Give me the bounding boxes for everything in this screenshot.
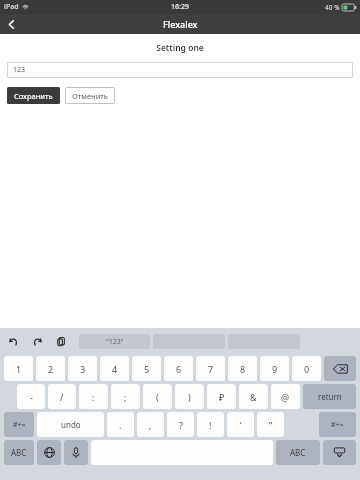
button[interactable]: &: [239, 384, 268, 409]
button[interactable]: undo: [37, 412, 104, 437]
button[interactable]: /: [48, 384, 76, 409]
button[interactable]: Paste: [53, 333, 69, 349]
staticText: 123: [13, 65, 26, 75]
staticText: ): [188, 391, 191, 403]
staticText: 5: [144, 363, 150, 375]
staticText: 8: [240, 363, 246, 375]
button[interactable]: 0: [292, 356, 321, 381]
button[interactable]: #+=: [319, 412, 356, 437]
staticText: .: [119, 419, 122, 431]
button[interactable]: ’: [227, 412, 254, 437]
button[interactable]: ?: [167, 412, 194, 437]
staticText: 9: [272, 363, 278, 375]
staticText: ,: [149, 419, 152, 431]
button[interactable]: (: [143, 384, 172, 409]
staticText: “123”: [106, 337, 124, 347]
button[interactable]: Hide keyboard: [323, 440, 356, 465]
button[interactable]: !: [197, 412, 224, 437]
button[interactable]: 123: [7, 62, 353, 78]
staticText: ’: [240, 419, 242, 431]
staticText: ABC: [290, 447, 306, 458]
staticText: 3: [80, 363, 86, 375]
button[interactable]: ABC: [4, 440, 34, 465]
staticText: (: [156, 391, 159, 403]
staticText: 2: [48, 363, 54, 375]
button[interactable]: “123”: [79, 334, 150, 349]
staticText: #+=: [331, 420, 344, 430]
staticText: /: [60, 391, 64, 403]
staticText: iPad: [4, 2, 19, 12]
button[interactable]: Delete: [324, 356, 356, 381]
button[interactable]: #+=: [4, 412, 34, 437]
staticText: ₽: [219, 391, 225, 403]
staticText: 1: [16, 363, 22, 375]
staticText: return: [318, 391, 342, 402]
staticText: Отменить: [72, 91, 108, 101]
button[interactable]: -: [17, 384, 45, 409]
button[interactable]: 1: [4, 356, 33, 381]
button[interactable]: Undo: [5, 333, 21, 349]
button[interactable]: 6: [164, 356, 193, 381]
button[interactable]: Back: [0, 14, 22, 34]
staticText: -: [30, 391, 33, 403]
button[interactable]: 2: [36, 356, 65, 381]
staticText: 6: [176, 363, 182, 375]
button[interactable]: :: [79, 384, 108, 409]
staticText: undo: [61, 419, 81, 430]
staticText: 4: [112, 363, 118, 375]
staticText: #+=: [13, 420, 26, 430]
staticText: Setting one: [0, 42, 360, 54]
staticText: ;: [124, 391, 127, 403]
staticText: 7: [208, 363, 214, 375]
button[interactable]: 9: [260, 356, 289, 381]
button[interactable]: Отменить: [65, 87, 115, 104]
staticText: &: [250, 391, 257, 403]
staticText: Сохранить: [14, 91, 53, 101]
staticText: Flexalex: [163, 18, 198, 30]
staticText: :: [92, 391, 95, 403]
staticText: ?: [179, 419, 183, 431]
button[interactable]: ): [175, 384, 204, 409]
staticText: ABC: [11, 447, 27, 458]
button[interactable]: ;: [111, 384, 140, 409]
staticText: 16:29: [171, 2, 189, 12]
button[interactable]: Dictation: [64, 440, 88, 465]
button[interactable]: @: [271, 384, 300, 409]
staticText: !: [209, 419, 212, 431]
button[interactable]: ”: [257, 412, 284, 437]
button[interactable]: return: [303, 384, 356, 409]
button[interactable]: 3: [68, 356, 97, 381]
button[interactable]: .: [107, 412, 134, 437]
button[interactable]: Redo: [29, 333, 45, 349]
staticText: @: [281, 391, 290, 403]
staticText: 40 %: [325, 3, 340, 12]
button[interactable]: 5: [132, 356, 161, 381]
button[interactable]: 7: [196, 356, 225, 381]
button[interactable]: ₽: [207, 384, 236, 409]
staticText: 0: [304, 363, 310, 375]
button[interactable]: Сохранить: [7, 87, 60, 104]
button[interactable]: 4: [100, 356, 129, 381]
button[interactable]: 8: [228, 356, 257, 381]
button[interactable]: Switch keyboard: [37, 440, 61, 465]
button[interactable]: ABC: [276, 440, 320, 465]
staticText: ”: [269, 419, 273, 431]
button[interactable]: ,: [137, 412, 164, 437]
